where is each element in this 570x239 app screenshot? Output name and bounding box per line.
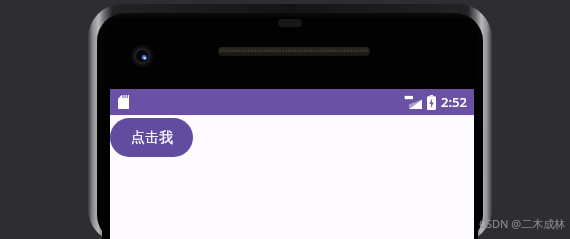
staticText: 点击我 bbox=[131, 129, 173, 147]
staticText: CSDN @二木成林 bbox=[479, 216, 566, 231]
button[interactable]: 点击我 bbox=[110, 118, 193, 157]
staticText: 2:52 bbox=[441, 93, 467, 111]
